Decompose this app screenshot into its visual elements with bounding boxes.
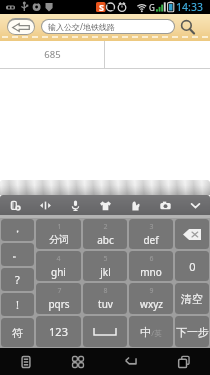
button[interactable]: Menu xyxy=(0,348,52,375)
staticText: G xyxy=(149,2,155,13)
staticText: 清空 xyxy=(181,292,203,306)
staticText: 。 xyxy=(12,246,23,260)
staticText: 中 xyxy=(140,325,151,339)
staticText: 6 xyxy=(149,254,154,264)
button[interactable]: ? xyxy=(1,268,34,291)
staticText: ! xyxy=(16,297,19,312)
button[interactable]: Back xyxy=(104,348,157,375)
staticText: pqrs xyxy=(48,297,70,311)
button[interactable]: Input method xyxy=(0,195,30,215)
button[interactable]: 7 xyxy=(36,283,81,314)
button[interactable]: 6 xyxy=(129,251,173,281)
staticText: 14:33 xyxy=(176,0,203,14)
button[interactable]: Voice input xyxy=(60,195,90,215)
button[interactable]: 2 xyxy=(83,219,127,249)
button[interactable]: 下一步 xyxy=(175,316,209,347)
staticText: 下一步 xyxy=(176,325,209,339)
staticText: 3 xyxy=(149,222,154,232)
staticText: /英 xyxy=(151,328,162,338)
staticText: 符 xyxy=(12,326,23,340)
staticText: 分词 xyxy=(49,233,69,246)
staticText: 2 xyxy=(103,222,108,232)
staticText: 1 xyxy=(57,222,62,232)
staticText: abc xyxy=(97,233,114,247)
staticText: ? xyxy=(15,272,20,287)
staticText: S xyxy=(99,1,104,12)
button[interactable]: ! xyxy=(1,293,34,316)
button[interactable]: Resize keyboard xyxy=(30,195,60,215)
button[interactable]: 5 xyxy=(83,251,127,281)
staticText: wxyz xyxy=(140,297,163,311)
button[interactable]: ， xyxy=(1,219,34,241)
button[interactable]: Apps xyxy=(52,348,104,375)
staticText: 123 xyxy=(49,324,68,339)
button[interactable]: 123 xyxy=(36,316,81,347)
button[interactable]: 1 xyxy=(36,219,81,249)
staticText: ， xyxy=(12,221,23,235)
staticText: mno xyxy=(140,265,162,279)
button[interactable]: 3 xyxy=(129,219,173,249)
button[interactable]: 685 xyxy=(0,41,104,68)
button[interactable]: Handwriting xyxy=(120,195,150,215)
staticText: 5 xyxy=(103,254,108,264)
button[interactable]: Back xyxy=(7,18,35,35)
button[interactable]: Hide keyboard xyxy=(180,195,210,215)
button[interactable]: Search xyxy=(178,17,198,37)
button[interactable] xyxy=(83,316,127,347)
button[interactable]: 8 xyxy=(83,283,127,314)
staticText: 685 xyxy=(44,48,61,61)
button[interactable]: 。 xyxy=(1,243,34,266)
button[interactable]: 9 xyxy=(129,283,173,314)
button[interactable]: 0 xyxy=(175,251,209,281)
button[interactable]: 4 xyxy=(36,251,81,281)
staticText: 8 xyxy=(103,286,108,296)
staticText: 0 xyxy=(189,259,196,274)
staticText: 7 xyxy=(57,286,62,296)
staticText: def xyxy=(143,233,159,247)
staticText: 4 xyxy=(56,254,61,264)
button[interactable]: 清空 xyxy=(175,283,209,314)
staticText: tuv xyxy=(98,297,113,311)
staticText: 输入公交/地铁线路 xyxy=(48,21,115,32)
button[interactable] xyxy=(175,219,209,249)
button[interactable]: 输入公交/地铁线路 xyxy=(41,19,175,34)
staticText: ghi xyxy=(51,265,66,279)
button[interactable]: Recents xyxy=(157,348,210,375)
button[interactable]: Camera xyxy=(150,195,180,215)
staticText: jkl xyxy=(100,265,111,279)
button[interactable]: Theme xyxy=(90,195,120,215)
button[interactable]: 中 xyxy=(129,316,173,347)
staticText: 9 xyxy=(149,286,154,296)
button[interactable]: 符 xyxy=(1,318,34,347)
